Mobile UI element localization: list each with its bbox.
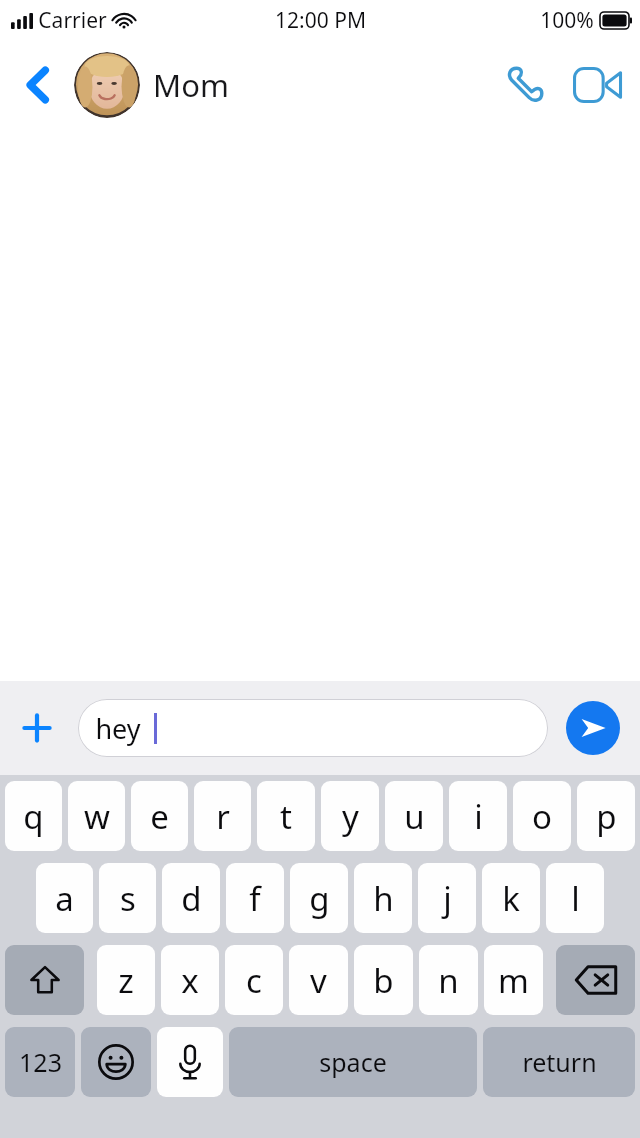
staticText: h: [373, 876, 394, 921]
button[interactable]: y: [321, 781, 379, 851]
staticText: j: [443, 876, 452, 921]
staticText: x: [181, 958, 199, 1003]
button[interactable]: j: [418, 863, 476, 933]
button[interactable]: r: [194, 781, 251, 851]
button[interactable]: w: [68, 781, 125, 851]
staticText: n: [438, 958, 459, 1003]
staticText: return: [522, 1045, 597, 1079]
staticText: s: [120, 876, 136, 921]
button[interactable]: v: [289, 945, 348, 1015]
button[interactable]: Backspace: [556, 945, 635, 1015]
button[interactable]: Emoji: [81, 1027, 151, 1097]
staticText: u: [404, 794, 425, 839]
button[interactable]: h: [354, 863, 412, 933]
button[interactable]: f: [226, 863, 284, 933]
staticText: o: [532, 794, 552, 839]
staticText: 123: [19, 1045, 62, 1079]
button[interactable]: q: [5, 781, 62, 851]
button[interactable]: Send: [566, 701, 620, 755]
staticText: Carrier: [38, 6, 107, 35]
button[interactable]: Shift: [5, 945, 84, 1015]
staticText: b: [373, 958, 394, 1003]
button[interactable]: k: [482, 863, 540, 933]
staticText: f: [249, 876, 261, 921]
staticText: c: [246, 958, 262, 1003]
button[interactable]: Video call: [568, 56, 626, 114]
staticText: hey: [95, 710, 141, 747]
button[interactable]: Audio call: [496, 56, 554, 114]
staticText: w: [84, 794, 110, 839]
staticText: t: [280, 794, 292, 839]
staticText: d: [181, 876, 202, 921]
button[interactable]: d: [162, 863, 220, 933]
button[interactable]: b: [354, 945, 413, 1015]
button[interactable]: a: [36, 863, 93, 933]
staticText: a: [55, 876, 74, 921]
button[interactable]: x: [161, 945, 219, 1015]
button[interactable]: return: [483, 1027, 635, 1097]
button[interactable]: l: [546, 863, 604, 933]
staticText: v: [310, 958, 327, 1003]
button[interactable]: i: [449, 781, 507, 851]
staticText: q: [23, 794, 44, 839]
staticText: 12:00 PM: [275, 6, 366, 35]
button[interactable]: e: [131, 781, 188, 851]
button[interactable]: m: [484, 945, 543, 1015]
button[interactable]: p: [577, 781, 635, 851]
staticText: space: [319, 1045, 387, 1079]
button[interactable]: hey: [78, 699, 548, 757]
staticText: r: [216, 794, 230, 839]
staticText: l: [571, 876, 580, 921]
button[interactable]: s: [99, 863, 156, 933]
staticText: y: [342, 794, 359, 839]
button[interactable]: t: [257, 781, 315, 851]
button[interactable]: o: [513, 781, 571, 851]
button[interactable]: space: [229, 1027, 477, 1097]
button[interactable]: g: [290, 863, 348, 933]
button[interactable]: Dictate: [157, 1027, 223, 1097]
button[interactable]: Add attachment: [6, 697, 68, 759]
button[interactable]: z: [97, 945, 155, 1015]
staticText: k: [502, 876, 520, 921]
button[interactable]: 123: [5, 1027, 75, 1097]
button[interactable]: u: [385, 781, 443, 851]
button[interactable]: n: [419, 945, 478, 1015]
staticText: Mom: [153, 64, 229, 106]
staticText: p: [596, 794, 617, 839]
button[interactable]: Back: [16, 63, 60, 107]
staticText: z: [118, 958, 134, 1003]
staticText: 100%: [540, 6, 594, 35]
button[interactable]: Mom: [74, 52, 229, 118]
staticText: m: [498, 958, 529, 1003]
button[interactable]: c: [225, 945, 283, 1015]
staticText: e: [150, 794, 169, 839]
staticText: i: [474, 794, 483, 839]
staticText: g: [309, 876, 330, 921]
